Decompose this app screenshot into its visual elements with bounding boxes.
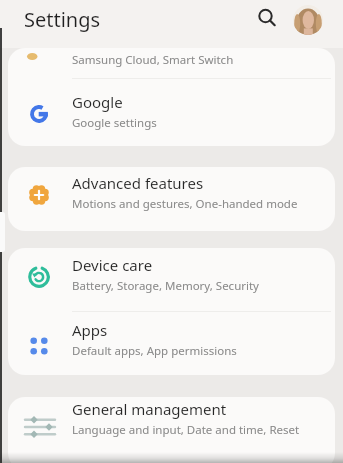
- staticText: Apps: [72, 320, 108, 340]
- staticText: Google: [72, 92, 123, 112]
- staticText: Advanced features: [72, 173, 204, 193]
- button[interactable]: General management: [8, 397, 335, 463]
- button[interactable]: [254, 5, 280, 31]
- staticText: Settings: [24, 6, 101, 33]
- button[interactable]: [293, 5, 323, 35]
- button[interactable]: Samsung Cloud, Smart Switch: [8, 48, 335, 78]
- button[interactable]: Device care: [8, 248, 335, 311]
- staticText: Default apps, App permissions: [72, 343, 237, 359]
- button[interactable]: Advanced features: [8, 167, 335, 231]
- button[interactable]: Apps: [8, 312, 335, 375]
- staticText: Language and input, Date and time, Reset: [72, 422, 300, 438]
- staticText: Google settings: [72, 115, 157, 131]
- staticText: Samsung Cloud, Smart Switch: [72, 52, 234, 68]
- staticText: General management: [72, 399, 227, 419]
- staticText: Motions and gestures, One-handed mode: [72, 196, 298, 212]
- button[interactable]: Google: [8, 79, 335, 146]
- staticText: Battery, Storage, Memory, Security: [72, 278, 259, 294]
- staticText: Device care: [72, 255, 153, 275]
